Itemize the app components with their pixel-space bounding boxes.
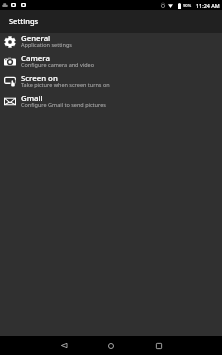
- staticText: Screen on: [21, 73, 58, 84]
- staticText: 90%: [183, 3, 192, 9]
- staticText: Configure Gmail to send pictures: [21, 101, 106, 108]
- staticText: Configure camera and video: [21, 61, 94, 68]
- staticText: Settings: [9, 16, 39, 26]
- staticText: Camera: [21, 53, 50, 64]
- button[interactable]: Back: [52, 336, 75, 355]
- staticText: Application settings: [21, 41, 72, 48]
- button[interactable]: Camera: [0, 53, 222, 73]
- staticText: Gmail: [21, 93, 43, 104]
- button[interactable]: Gmail: [0, 93, 222, 113]
- staticText: General: [21, 33, 51, 44]
- staticText: 11:24 AM: [196, 2, 220, 9]
- button[interactable]: Home: [99, 336, 122, 355]
- button[interactable]: General: [0, 33, 222, 53]
- button[interactable]: Screen on: [0, 73, 222, 93]
- staticText: Take picture when screen turns on: [21, 81, 110, 88]
- button[interactable]: Recents: [147, 336, 170, 355]
